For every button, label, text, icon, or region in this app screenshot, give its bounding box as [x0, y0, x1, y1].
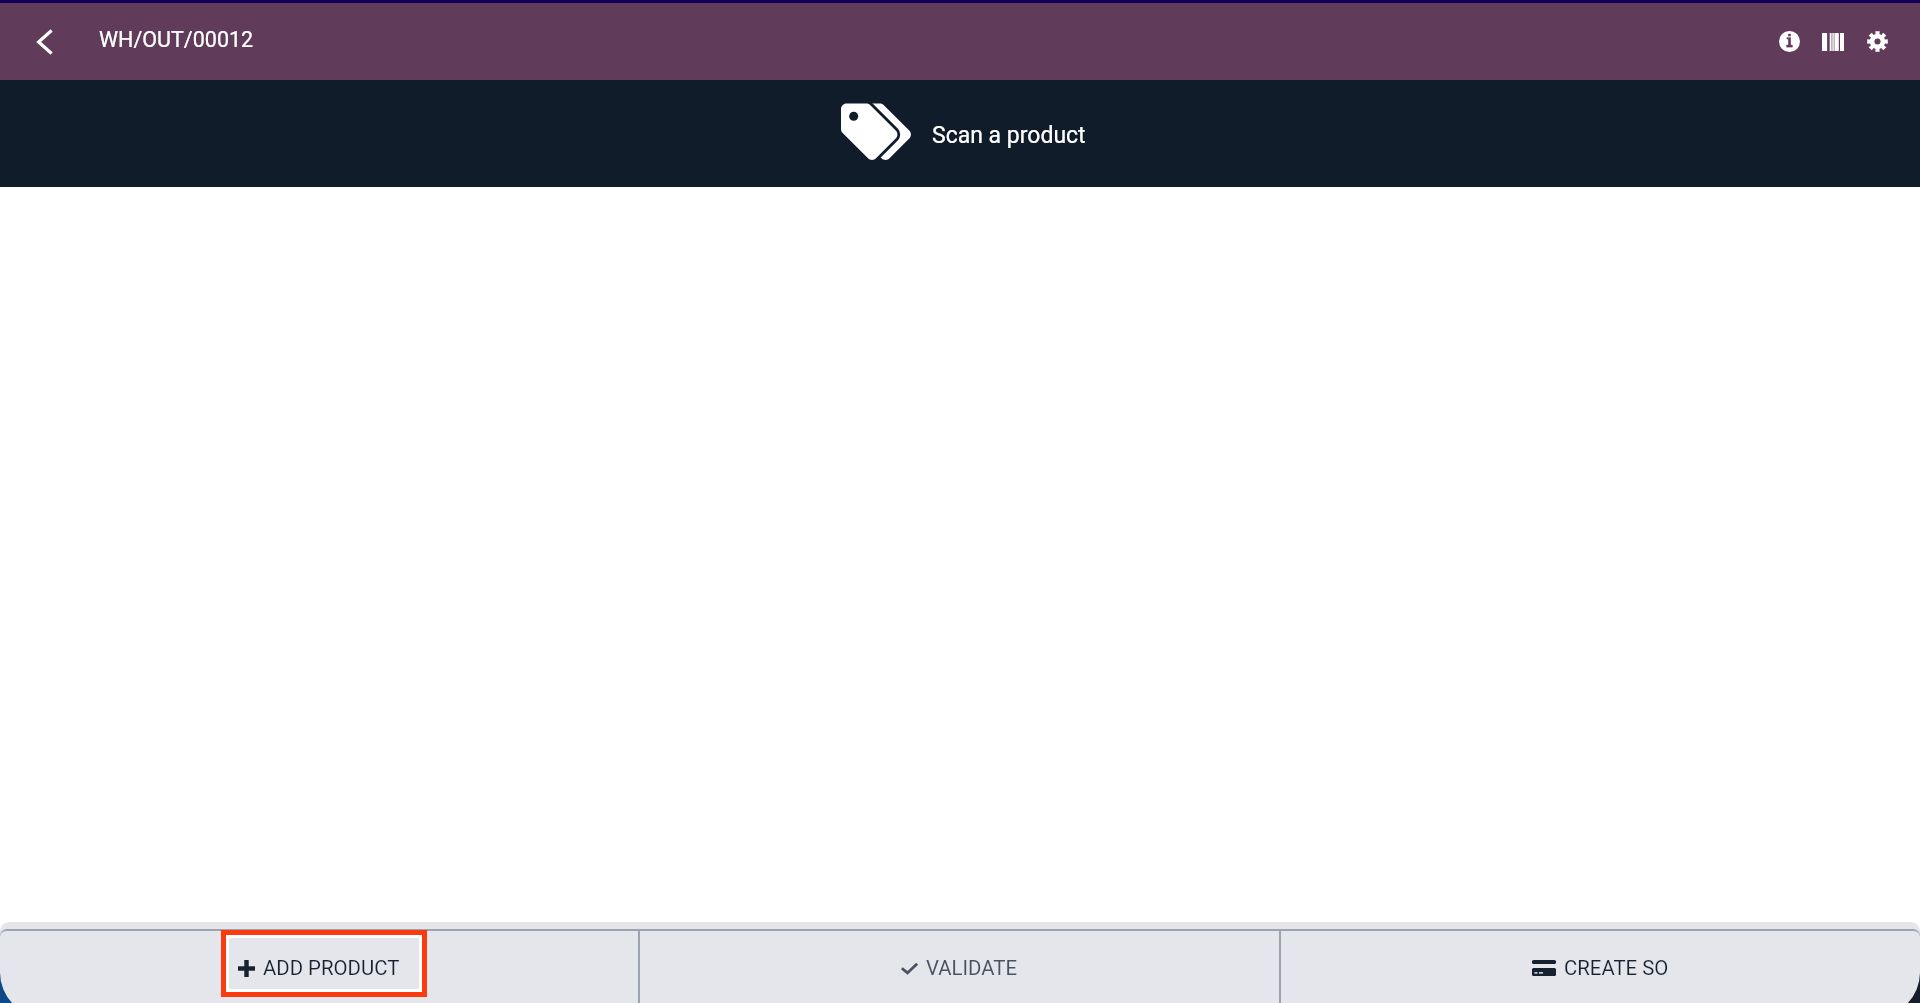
button[interactable]: Back [0, 3, 88, 80]
staticText: Scan a product [932, 122, 1086, 149]
button[interactable]: CREATE SO [1281, 929, 1920, 1003]
button[interactable]: ADD PRODUCT [0, 929, 638, 1003]
button[interactable]: VALIDATE [640, 929, 1279, 1003]
button[interactable]: Scan barcode [1811, 3, 1855, 80]
button[interactable]: Information [1767, 3, 1811, 80]
staticText: VALIDATE [926, 956, 1018, 980]
button[interactable]: Settings [1855, 3, 1899, 80]
staticText: WH/OUT/00012 [99, 27, 254, 52]
staticText: ADD PRODUCT [263, 956, 400, 980]
staticText: CREATE SO [1564, 956, 1669, 980]
